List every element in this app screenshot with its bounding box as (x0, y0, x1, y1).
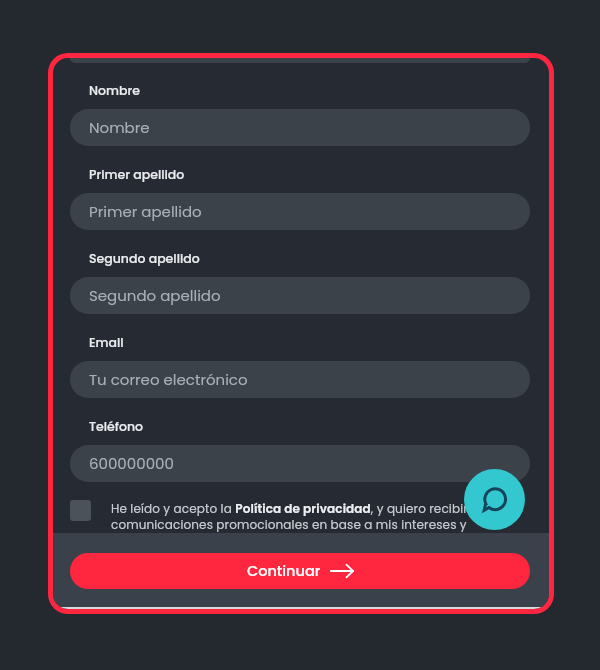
button[interactable]: Nombre (70, 109, 530, 146)
staticText: 600000000 (89, 453, 174, 474)
staticText: Segundo apellido (89, 285, 221, 306)
button[interactable]: Tu correo electrónico (70, 361, 530, 398)
staticText: Primer apellido (89, 201, 202, 222)
staticText: Nombre (89, 117, 150, 138)
staticText: Email (89, 334, 124, 351)
button[interactable]: Segundo apellido (70, 277, 530, 314)
button[interactable]: Primer apellido (70, 193, 530, 230)
button[interactable]: Continuar (70, 553, 530, 589)
button[interactable]: 600000000 (70, 445, 530, 482)
button[interactable]: Aceptar la política de privacidad (70, 500, 91, 521)
staticText: Tu correo electrónico (89, 369, 248, 390)
staticText: He leído y acepto la Política de privaci… (111, 500, 530, 533)
staticText: Continuar (247, 561, 321, 581)
staticText: Nombre (89, 82, 140, 99)
button[interactable]: Abrir chat de ayuda (464, 469, 525, 530)
staticText: Segundo apellido (89, 250, 200, 267)
staticText: Primer apellido (89, 166, 185, 183)
staticText: Teléfono (89, 418, 143, 435)
